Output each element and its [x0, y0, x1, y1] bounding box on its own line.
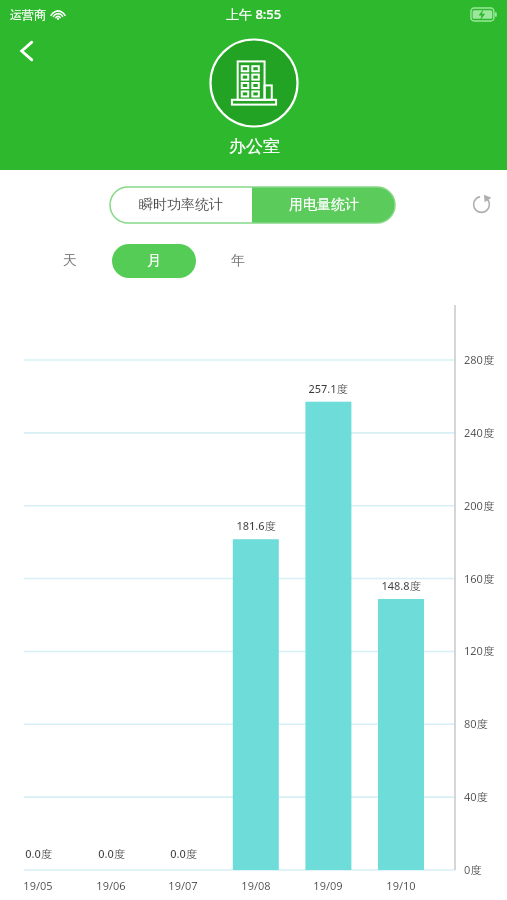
staticText: 月 — [147, 252, 161, 270]
staticText: 用电量统计 — [289, 196, 359, 214]
button[interactable]: 天 — [44, 244, 96, 278]
staticText: 0.0度 — [25, 846, 52, 861]
staticText: 0.0度 — [98, 846, 125, 861]
button[interactable]: Refresh — [463, 186, 499, 222]
staticText: 200度 — [464, 498, 494, 513]
staticText: 天 — [63, 252, 77, 270]
staticText: 120度 — [464, 643, 494, 658]
staticText: 19/07 — [168, 878, 198, 893]
staticText: 19/09 — [313, 878, 343, 893]
staticText: 19/06 — [96, 878, 126, 893]
staticText: 年 — [231, 252, 245, 270]
staticText: 160度 — [464, 571, 494, 586]
staticText: 0.0度 — [170, 846, 197, 861]
staticText: 257.1度 — [308, 381, 348, 396]
button[interactable]: 瞬时功率统计 — [110, 187, 252, 223]
staticText: 瞬时功率统计 — [139, 196, 223, 214]
staticText: 80度 — [464, 716, 488, 731]
staticText: 240度 — [464, 425, 494, 440]
staticText: 19/08 — [241, 878, 271, 893]
button[interactable]: 月 — [112, 244, 196, 278]
staticText: 280度 — [464, 352, 494, 367]
staticText: 19/05 — [23, 878, 53, 893]
staticText: 0度 — [464, 862, 482, 877]
staticText: 运营商 — [10, 7, 46, 22]
staticText: 上午 8:55 — [226, 5, 282, 23]
button[interactable]: 用电量统计 — [252, 187, 395, 223]
staticText: 181.6度 — [236, 518, 276, 533]
button[interactable]: 年 — [212, 244, 264, 278]
button[interactable]: Back — [4, 28, 50, 74]
staticText: 148.8度 — [381, 578, 421, 593]
staticText: 40度 — [464, 789, 488, 804]
staticText: 19/10 — [386, 878, 416, 893]
staticText: 办公室 — [229, 136, 280, 157]
